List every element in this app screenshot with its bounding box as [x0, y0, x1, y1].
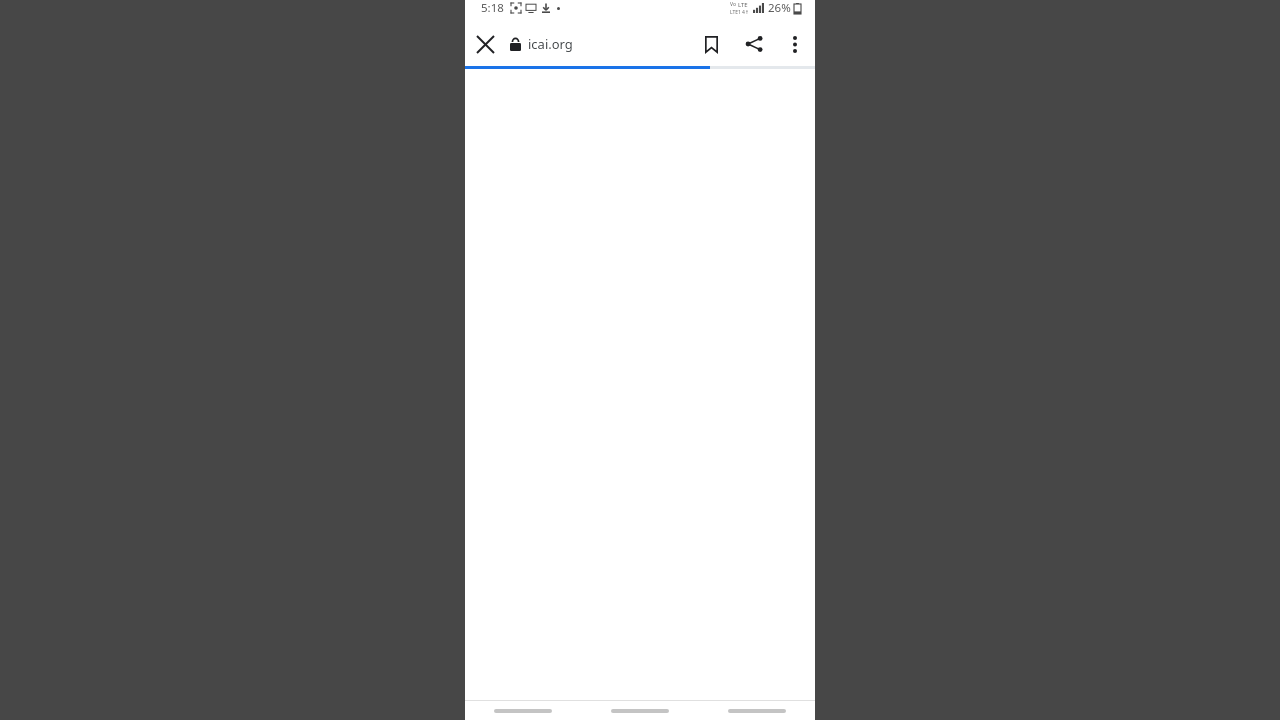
staticText: 4↑	[742, 9, 750, 16]
button[interactable]: Home	[581, 701, 698, 720]
button[interactable]: Bookmark	[689, 22, 733, 66]
staticText: icai.org	[528, 35, 573, 53]
staticText: LTE1	[730, 9, 741, 16]
staticText: Vo	[730, 1, 736, 8]
button[interactable]: Recents	[698, 701, 815, 720]
button[interactable]: Close	[465, 24, 505, 64]
staticText: 26%	[768, 0, 791, 16]
button[interactable]: icai.org	[510, 22, 689, 66]
button[interactable]: Back	[465, 701, 581, 720]
staticText: LTE	[738, 1, 748, 9]
staticText: 5:18	[481, 0, 504, 16]
button[interactable]: Share	[733, 23, 775, 65]
button[interactable]: More options	[775, 24, 815, 64]
